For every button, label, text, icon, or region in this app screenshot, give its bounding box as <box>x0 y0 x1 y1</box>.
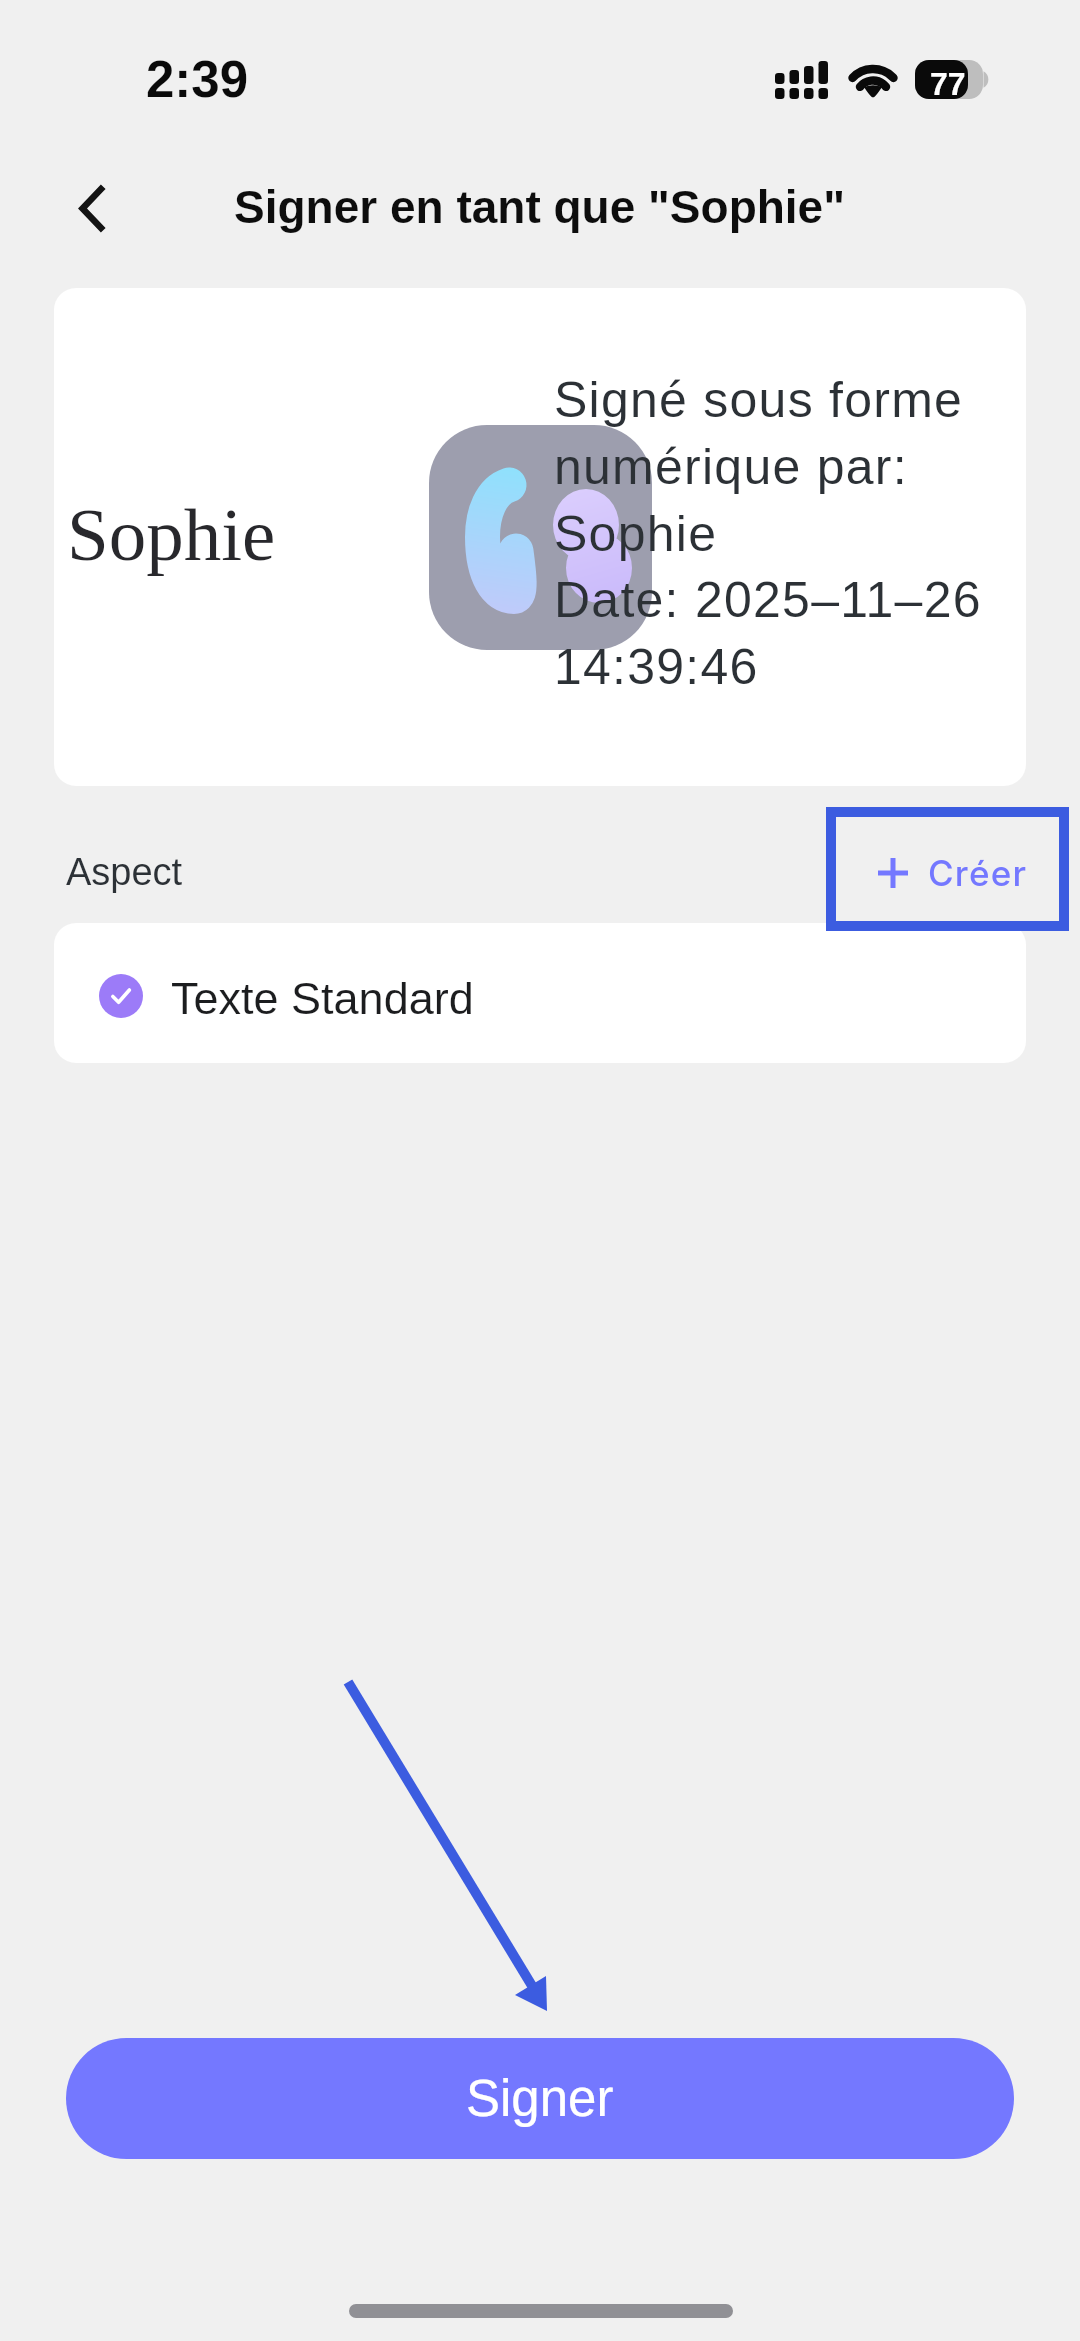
staticText: Texte Standard <box>171 973 474 1023</box>
button[interactable]: Texte Standard <box>54 923 1026 1063</box>
staticText: Créer <box>928 852 1028 894</box>
staticText: 77 <box>930 66 966 102</box>
staticText: Sophie <box>67 493 276 576</box>
staticText: Sophie <box>554 506 718 562</box>
staticText: Signé sous forme <box>554 372 964 428</box>
staticText: numérique par: <box>554 439 908 495</box>
staticText: Signer en tant que "Sophie" <box>234 181 846 232</box>
button[interactable]: Signer <box>66 2038 1014 2159</box>
staticText: 14:39:46 <box>554 639 759 695</box>
button[interactable]: Back <box>50 167 132 249</box>
staticText: Date: 2025–11–26 <box>554 572 982 628</box>
button[interactable]: Créer <box>836 818 1058 928</box>
staticText: Aspect <box>66 851 183 893</box>
staticText: 2:39 <box>146 51 249 108</box>
staticText: Signer <box>466 2070 614 2127</box>
